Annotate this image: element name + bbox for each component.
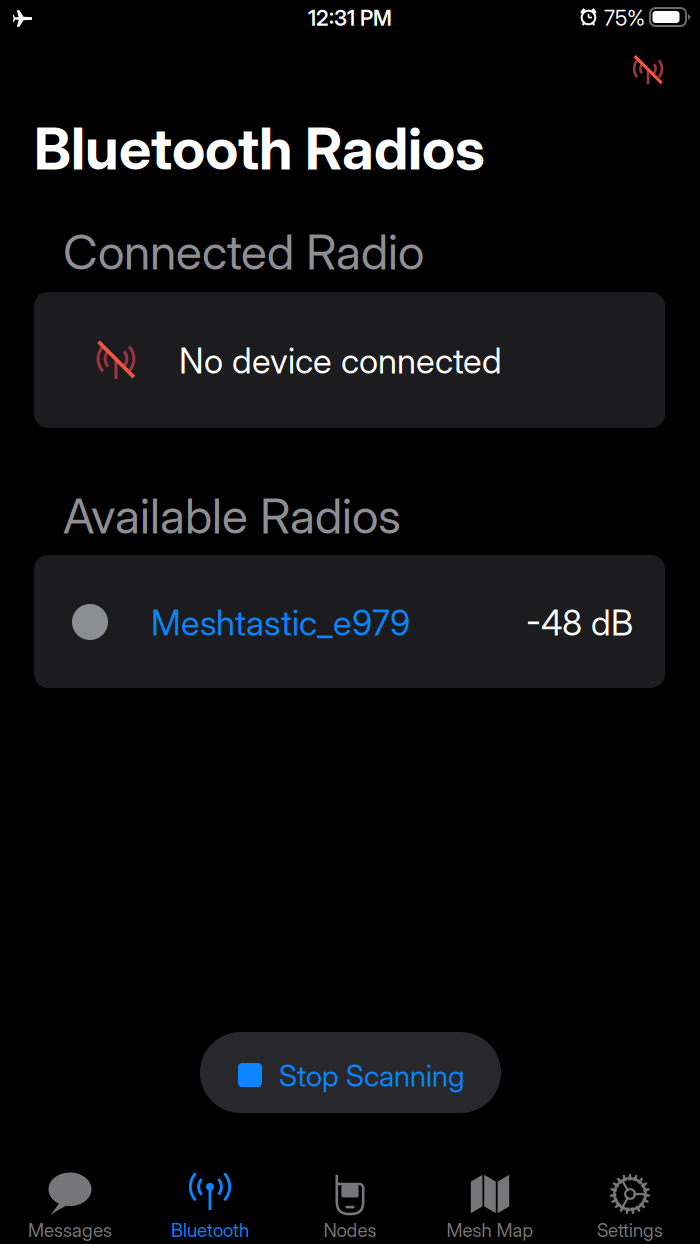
button[interactable]: Messages xyxy=(0,1174,140,1244)
button[interactable]: Meshtastic_e979 xyxy=(34,555,665,688)
staticText: 12:31 PM xyxy=(308,5,392,31)
staticText: Messages xyxy=(28,1219,112,1242)
button[interactable]: Radio disconnected xyxy=(617,41,679,99)
staticText: -48 dB xyxy=(526,602,633,644)
staticText: 75% xyxy=(604,5,645,31)
staticText: Available Radios xyxy=(63,487,401,545)
staticText: Nodes xyxy=(323,1219,376,1242)
staticText: Mesh Map xyxy=(446,1219,533,1242)
button[interactable]: Stop Scanning xyxy=(200,1032,501,1113)
button[interactable]: Mesh Map xyxy=(420,1174,560,1244)
staticText: Meshtastic_e979 xyxy=(151,602,410,644)
staticText: Connected Radio xyxy=(63,223,424,281)
button[interactable]: Nodes xyxy=(280,1174,420,1244)
button[interactable]: Bluetooth xyxy=(140,1174,280,1244)
staticText: Settings xyxy=(597,1219,663,1242)
button[interactable]: Settings xyxy=(560,1174,700,1244)
staticText: Bluetooth xyxy=(171,1219,249,1242)
staticText: Bluetooth Radios xyxy=(34,114,485,183)
staticText: Stop Scanning xyxy=(279,1058,465,1093)
staticText: No device connected xyxy=(179,340,502,382)
